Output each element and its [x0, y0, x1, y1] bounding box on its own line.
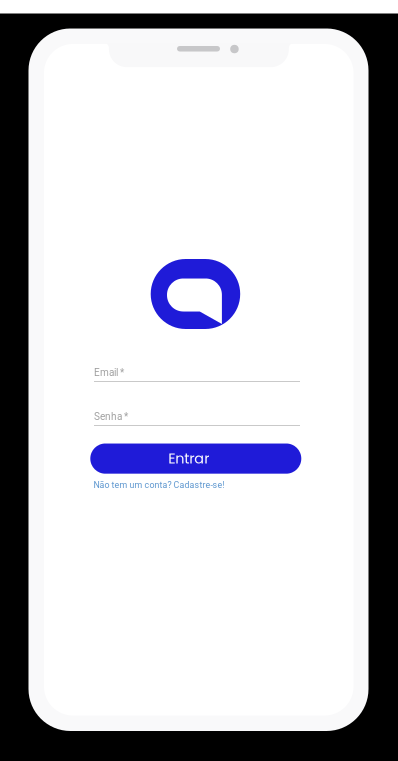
staticText: Entrar — [168, 448, 209, 469]
staticText: Senha * — [94, 411, 128, 422]
button[interactable]: Não tem um conta? Cadastre-se! — [93, 479, 304, 490]
staticText: Não tem um conta? Cadastre-se! — [93, 480, 224, 490]
button[interactable]: Entrar — [90, 443, 301, 474]
button[interactable]: Email * — [94, 365, 300, 387]
staticText: Email * — [94, 367, 124, 378]
button[interactable]: Senha * — [94, 409, 300, 431]
